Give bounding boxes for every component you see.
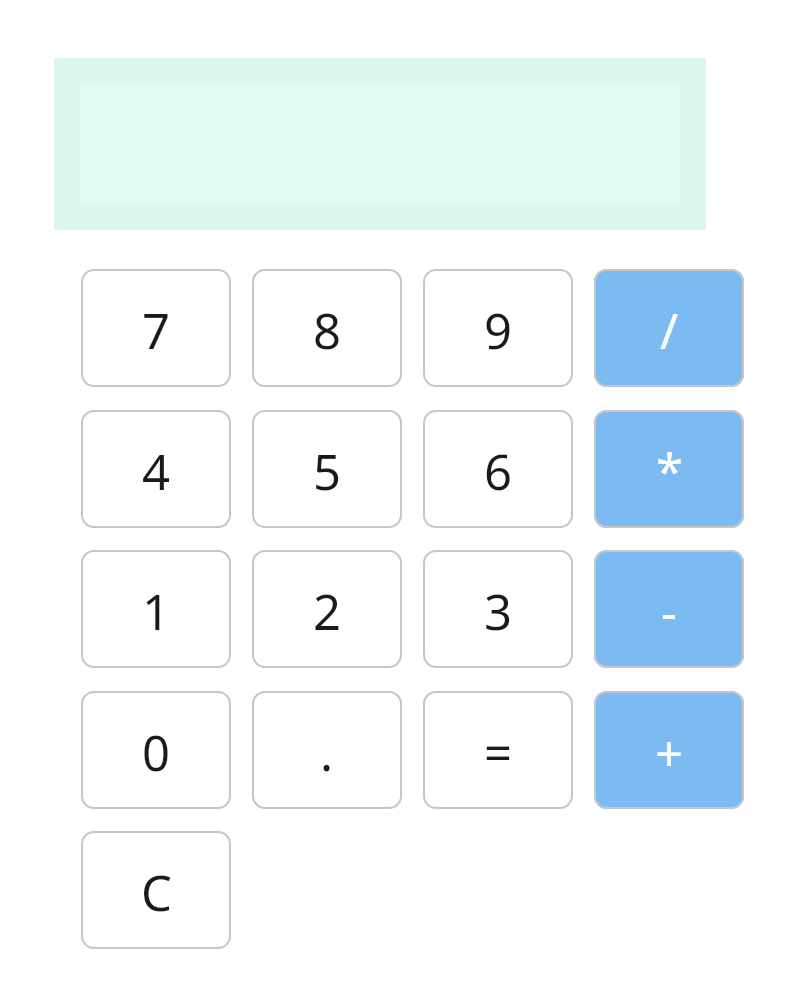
button[interactable]: - (594, 550, 744, 668)
staticText: 6 (484, 438, 513, 505)
staticText: 8 (313, 297, 342, 364)
staticText: 3 (484, 578, 513, 645)
staticText: 2 (313, 578, 342, 645)
button[interactable]: = (423, 691, 573, 809)
staticText: 9 (484, 297, 513, 364)
staticText: * (656, 438, 683, 505)
button[interactable]: 9 (423, 269, 573, 387)
button[interactable]: * (594, 410, 744, 528)
staticText: / (660, 297, 679, 364)
button[interactable]: 0 (81, 691, 231, 809)
staticText: 1 (142, 578, 171, 645)
button[interactable]: / (594, 269, 744, 387)
staticText: 0 (142, 719, 171, 786)
staticText: C (141, 859, 172, 926)
button[interactable]: 8 (252, 269, 402, 387)
staticText: 7 (142, 297, 171, 364)
button[interactable]: 2 (252, 550, 402, 668)
staticText: = (484, 719, 513, 786)
button[interactable]: 6 (423, 410, 573, 528)
button[interactable]: 3 (423, 550, 573, 668)
button[interactable]: 5 (252, 410, 402, 528)
staticText: 5 (313, 438, 342, 505)
staticText: + (655, 719, 684, 786)
staticText: - (661, 578, 677, 645)
staticText: 4 (142, 438, 171, 505)
button[interactable]: 4 (81, 410, 231, 528)
button[interactable]: 1 (81, 550, 231, 668)
button[interactable]: . (252, 691, 402, 809)
button[interactable]: + (594, 691, 744, 809)
button[interactable]: 7 (81, 269, 231, 387)
staticText: . (320, 719, 334, 786)
button[interactable]: C (81, 831, 231, 949)
